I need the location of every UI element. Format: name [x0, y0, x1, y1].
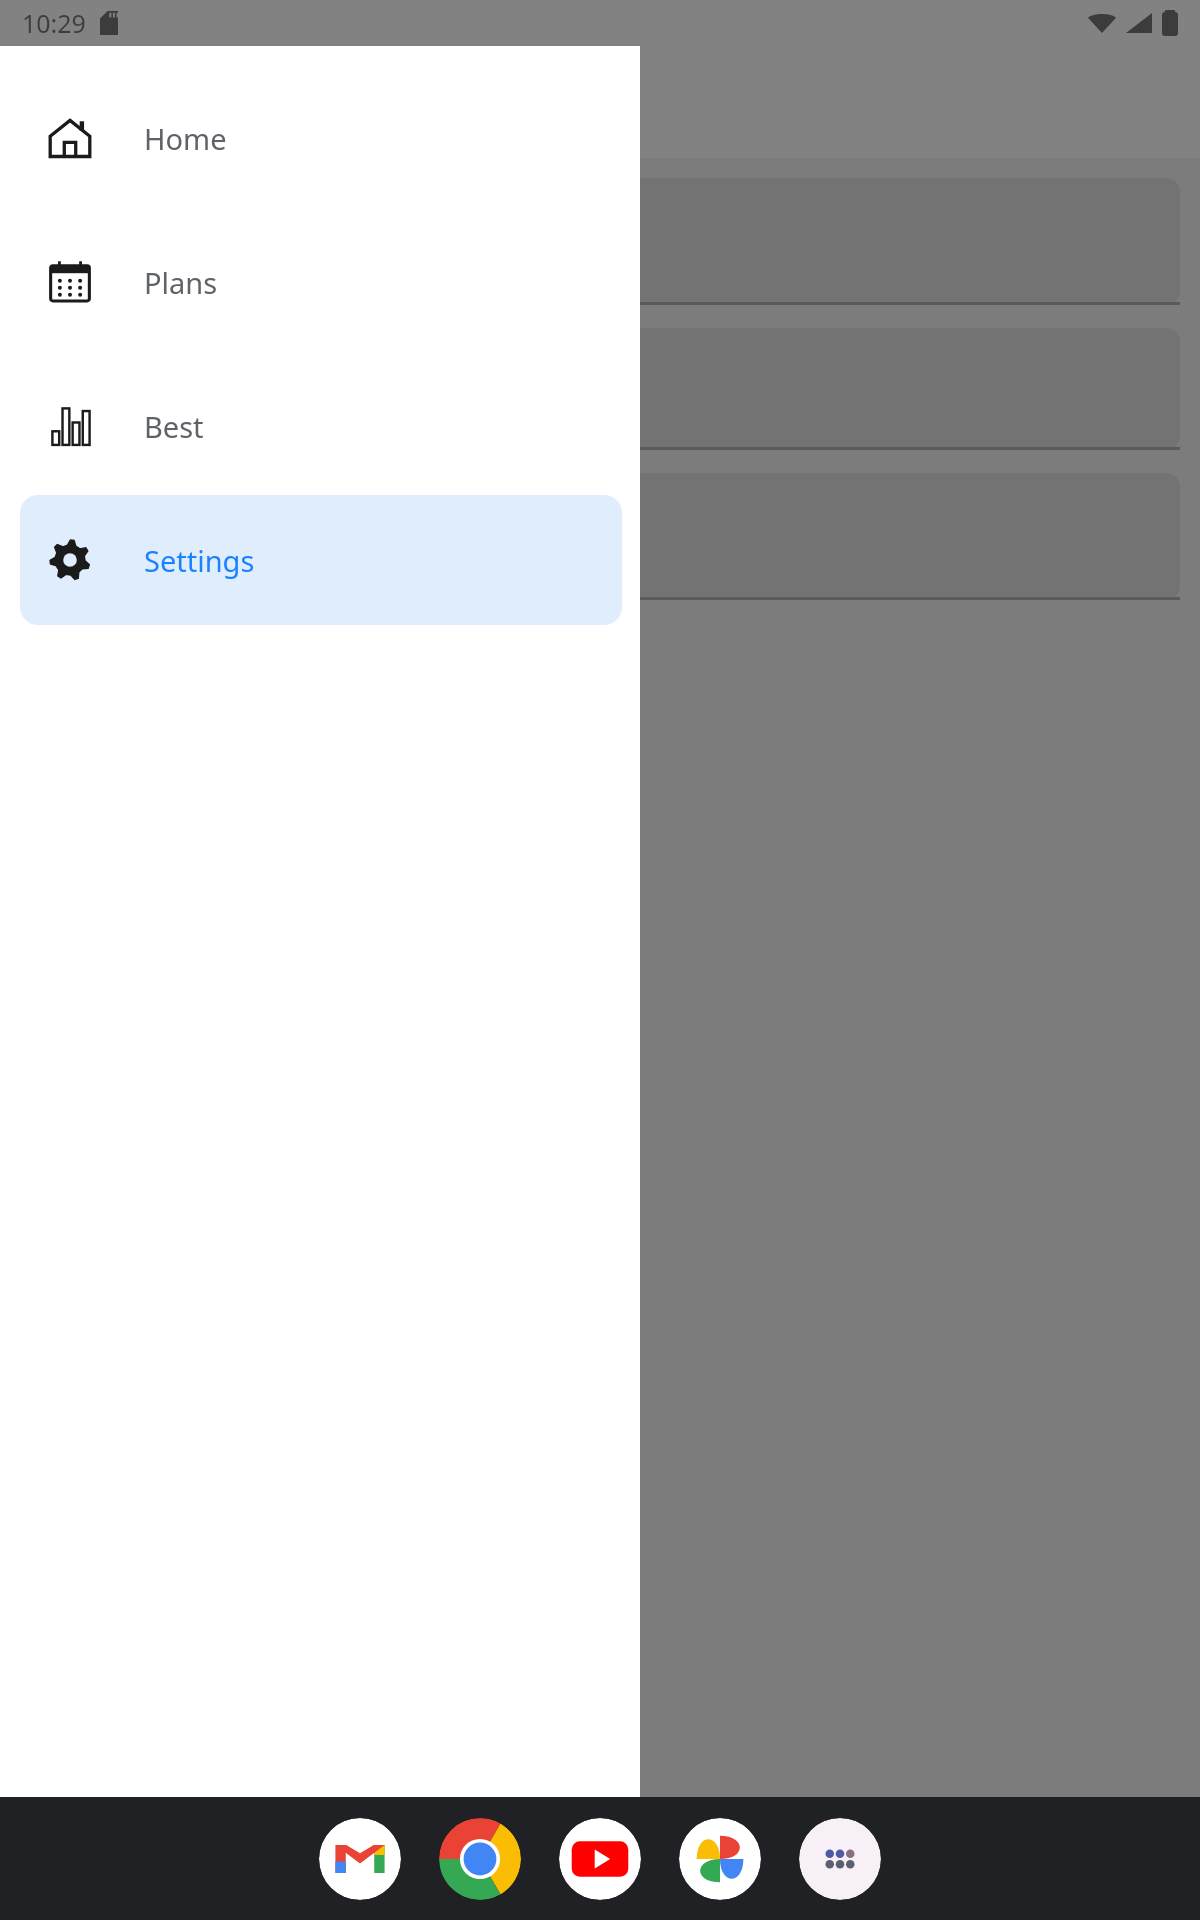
staticText: Settings	[144, 541, 255, 580]
staticText: Plans	[144, 263, 218, 302]
button[interactable]	[0, 328, 1180, 450]
button[interactable]	[0, 473, 1180, 600]
button[interactable]: Plans	[20, 217, 622, 347]
button[interactable]: Home	[20, 73, 622, 203]
button[interactable]	[0, 178, 1180, 305]
button[interactable]: Best	[20, 361, 622, 491]
staticText: Home	[144, 119, 227, 158]
button[interactable]: Gmail	[319, 1818, 401, 1900]
button[interactable]: All apps	[799, 1818, 881, 1900]
staticText: 10:29	[22, 6, 86, 40]
button[interactable]: YouTube	[559, 1818, 641, 1900]
button[interactable]: Settings	[20, 495, 622, 625]
button[interactable]: Chrome	[439, 1818, 521, 1900]
button[interactable]: Google Photos	[679, 1818, 761, 1900]
staticText: Best	[144, 407, 204, 446]
